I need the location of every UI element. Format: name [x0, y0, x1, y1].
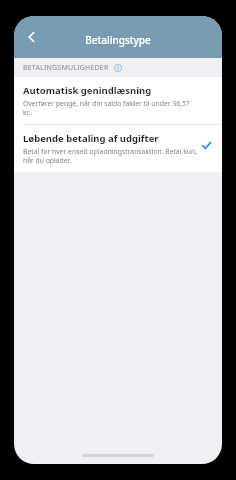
staticText: Betal for hver enkelt opladningstransakt…	[23, 147, 198, 156]
button[interactable]: Automatisk genindlæsning	[14, 77, 222, 124]
staticText: Automatisk genindlæsning	[23, 84, 152, 97]
button[interactable]: Back	[18, 23, 46, 51]
button[interactable]: Information	[113, 63, 122, 72]
staticText: Løbende betaling af udgifter	[23, 132, 159, 145]
staticText: når du oplader.	[23, 156, 72, 165]
staticText: BETALINGSMULIGHEDER	[23, 63, 109, 73]
button[interactable]: Løbende betaling af udgifter	[14, 125, 222, 172]
staticText: Overfører penge, når din saldo falder ti…	[23, 99, 198, 117]
staticText: Betalingstype	[85, 33, 151, 47]
